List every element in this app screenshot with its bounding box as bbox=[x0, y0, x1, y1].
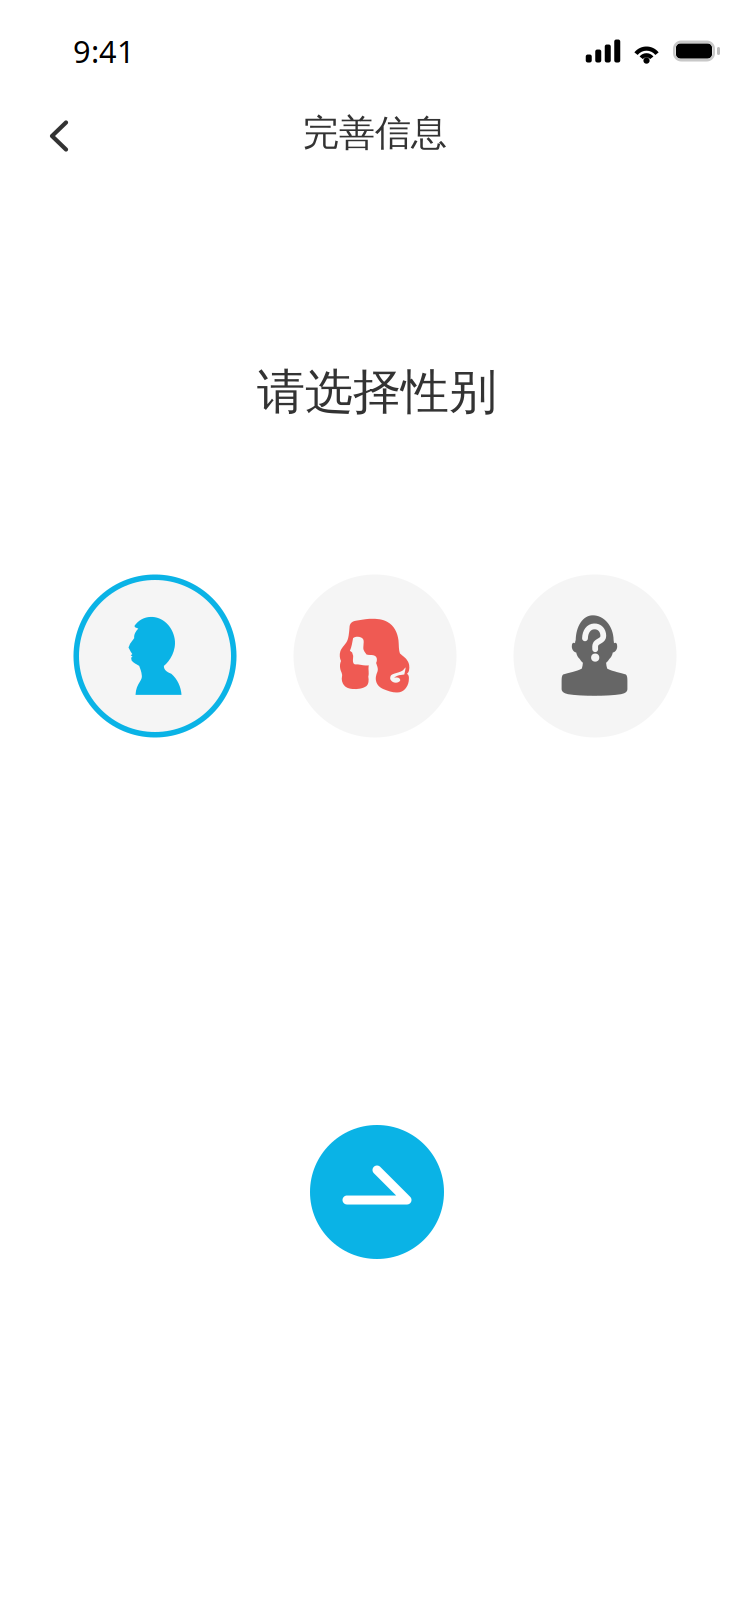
staticText: 9:41 bbox=[73, 31, 135, 71]
button[interactable]: Back bbox=[0, 95, 98, 170]
button[interactable]: Unknown bbox=[513, 574, 676, 737]
button[interactable]: Male bbox=[73, 574, 236, 737]
button[interactable]: Female bbox=[293, 574, 456, 737]
button[interactable]: Next bbox=[310, 1125, 444, 1259]
staticText: 请选择性别 bbox=[257, 362, 497, 421]
staticText: 完善信息 bbox=[303, 111, 447, 155]
